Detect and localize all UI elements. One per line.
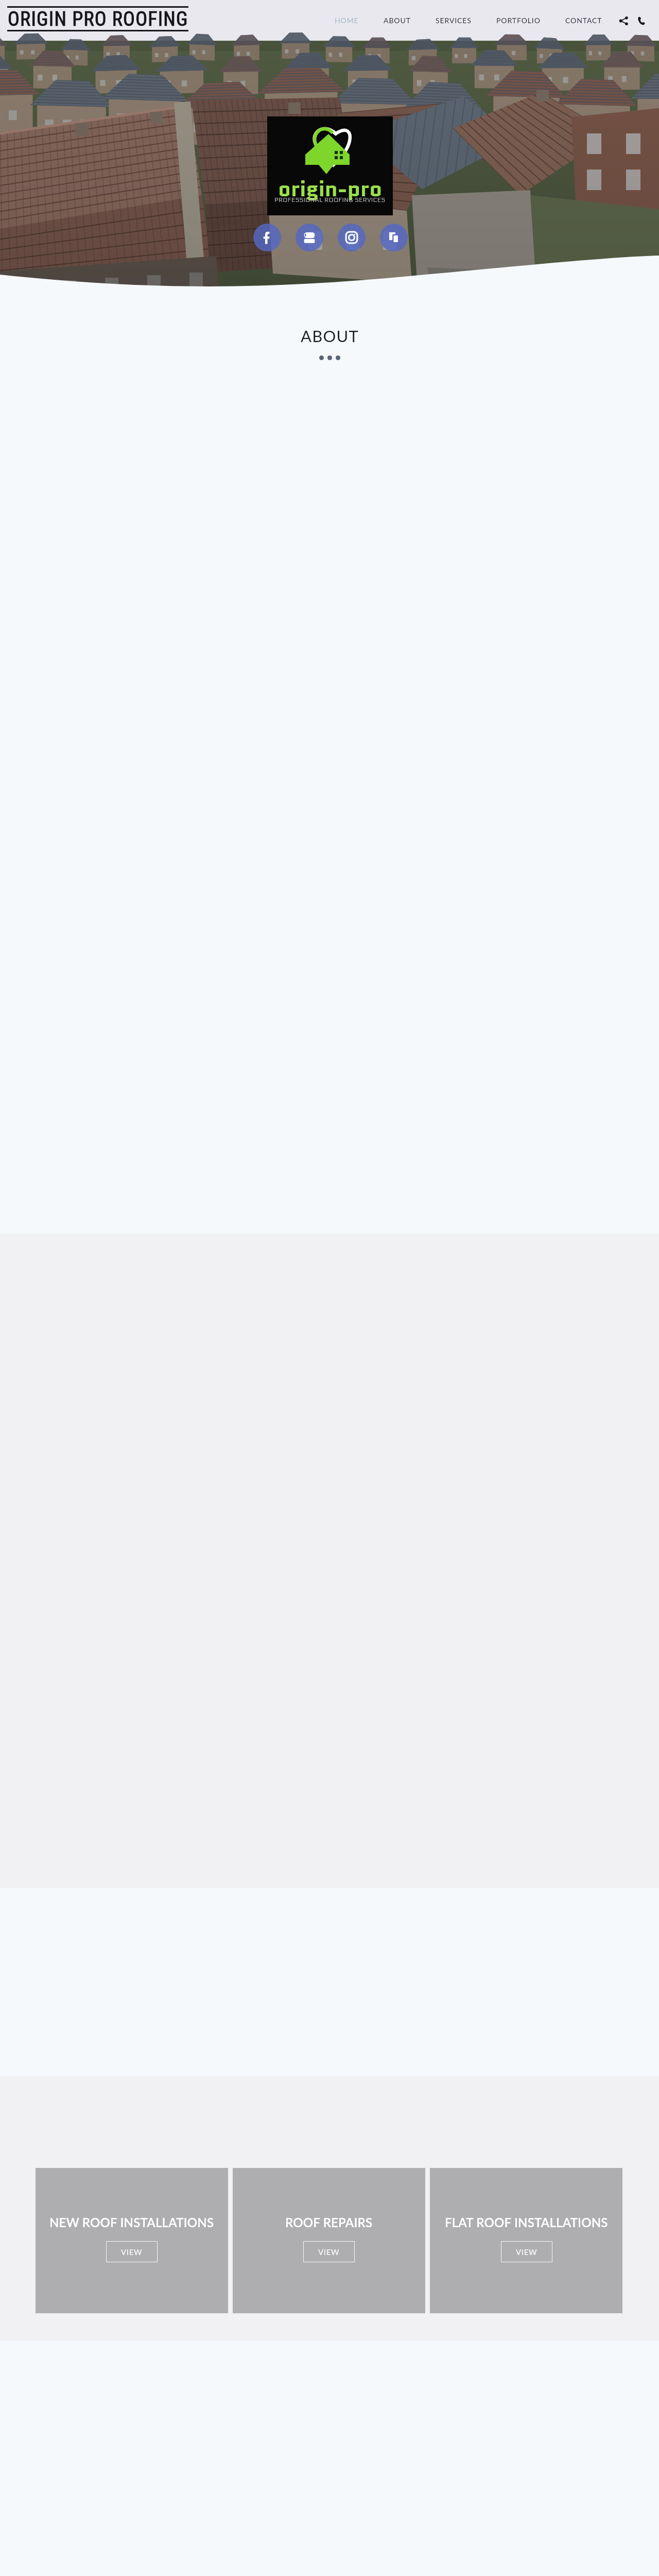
staticText: SERVICES	[436, 16, 472, 25]
staticText: ABOUT	[301, 326, 359, 345]
staticText: ROOF REPAIRS	[285, 2215, 373, 2230]
button[interactable]: Instagram	[338, 224, 366, 251]
staticText: ABOUT	[384, 16, 411, 25]
staticText: HOME	[335, 16, 359, 25]
button[interactable]: VIEW	[303, 2241, 355, 2262]
button[interactable]: Share	[615, 12, 632, 29]
staticText: VIEW	[516, 2247, 537, 2257]
button[interactable]: SERVICES	[423, 11, 484, 30]
button[interactable]: VIEW	[501, 2241, 552, 2262]
staticText: FLAT ROOF INSTALLATIONS	[445, 2215, 608, 2230]
staticText: NEW ROOF INSTALLATIONS	[49, 2215, 214, 2230]
button[interactable]: CONTACT	[553, 11, 615, 30]
staticText: VIEW	[318, 2247, 340, 2257]
button[interactable]: Facebook	[253, 224, 281, 251]
button[interactable]: ROOF REPAIRS	[233, 2168, 425, 2313]
staticText: PORTFOLIO	[496, 16, 541, 25]
staticText: CONTACT	[565, 16, 602, 25]
button[interactable]: FLAT ROOF INSTALLATIONS	[430, 2168, 622, 2313]
button[interactable]: Reviews	[380, 224, 408, 251]
button[interactable]: Call	[632, 12, 650, 29]
button[interactable]: ORIGIN PRO ROOFING	[7, 6, 188, 31]
button[interactable]: NEW ROOF INSTALLATIONS	[36, 2168, 228, 2313]
staticText: VIEW	[121, 2247, 143, 2257]
button[interactable]: VIEW	[106, 2241, 158, 2262]
staticText: PROFESSIONAL ROOFING SERVICES	[274, 196, 386, 204]
staticText: ORIGIN PRO ROOFING	[8, 8, 188, 30]
button[interactable]: PORTFOLIO	[484, 11, 553, 30]
staticText: origin-pro	[278, 173, 383, 204]
button[interactable]: HOME	[322, 11, 371, 30]
button[interactable]: YouTube	[296, 224, 323, 251]
button[interactable]: ABOUT	[371, 11, 423, 30]
